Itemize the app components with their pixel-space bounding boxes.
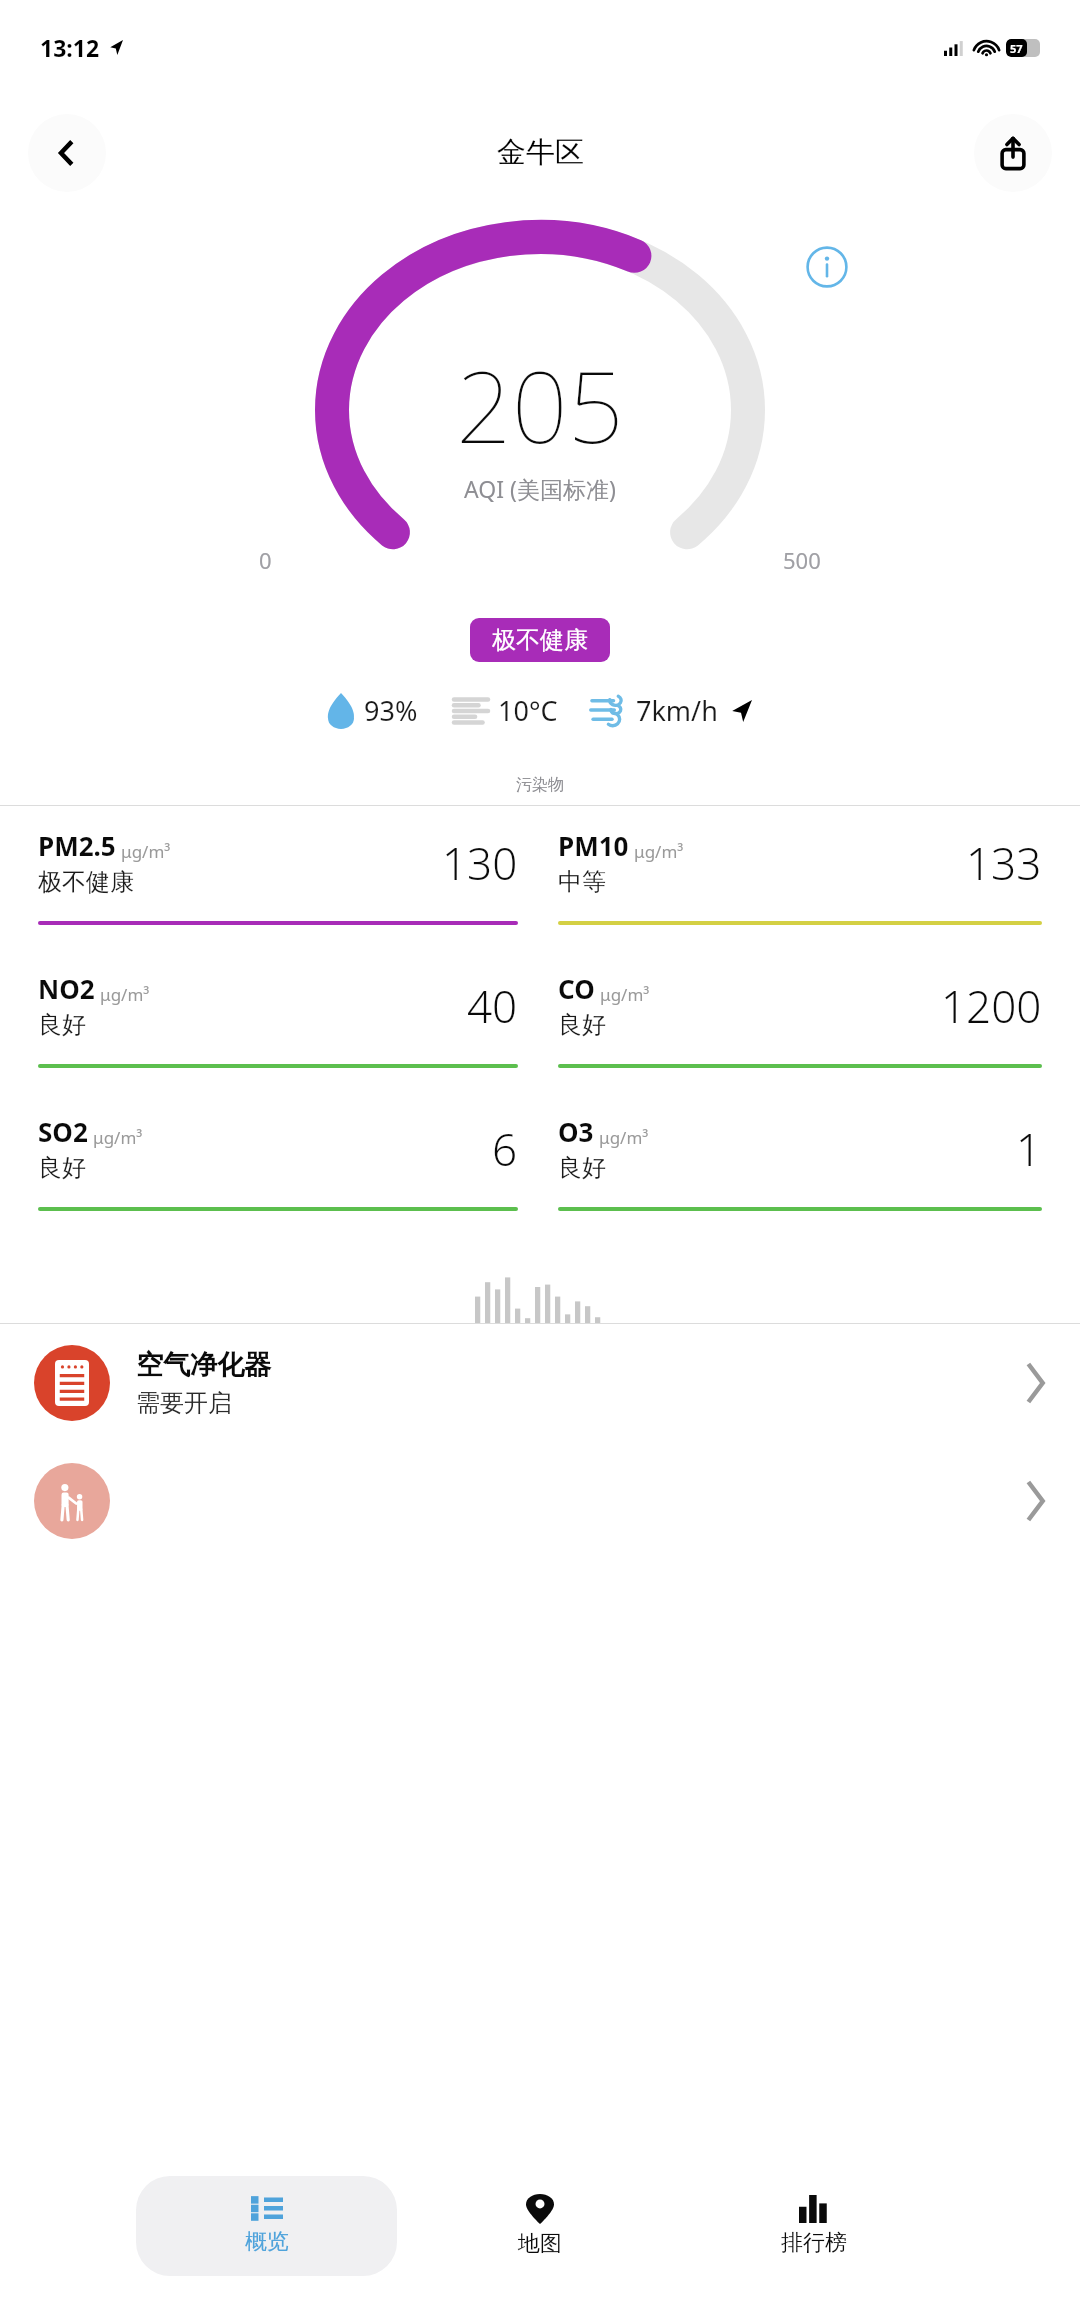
staticText: 1 — [1016, 1119, 1042, 1179]
staticText: O3 — [558, 1114, 594, 1149]
staticText: 130 — [442, 833, 518, 893]
button[interactable]: Back — [28, 114, 106, 192]
button[interactable]: Share — [974, 114, 1052, 192]
staticText: 1200 — [941, 976, 1042, 1036]
button[interactable]: 极不健康 — [470, 618, 610, 662]
button[interactable]: Info — [806, 246, 848, 288]
button[interactable]: 地图 — [403, 2170, 677, 2282]
button[interactable]: 空气净化器 — [0, 1324, 1080, 1442]
staticText: 10°C — [498, 692, 558, 729]
staticText: μg/m³ — [599, 1126, 649, 1149]
staticText: 57 — [1010, 41, 1023, 56]
staticText: NO2 — [38, 971, 95, 1006]
staticText: 7km/h — [636, 692, 718, 729]
staticText: 良好 — [38, 1010, 86, 1040]
staticText: 500 — [783, 545, 821, 575]
staticText: 良好 — [558, 1010, 606, 1040]
staticText: 6 — [492, 1119, 518, 1179]
staticText: AQI (美国标准) — [464, 473, 616, 504]
staticText: 93% — [364, 692, 418, 729]
staticText: μg/m³ — [100, 983, 150, 1006]
staticText: 中等 — [558, 867, 606, 897]
staticText: 金牛区 — [497, 134, 584, 171]
staticText: 污染物 — [0, 775, 1080, 795]
staticText: μg/m³ — [121, 840, 171, 863]
staticText: 133 — [966, 833, 1042, 893]
staticText: 良好 — [558, 1153, 606, 1183]
button[interactable]: 概览 — [136, 2176, 397, 2276]
staticText: 极不健康 — [38, 867, 134, 897]
staticText: 极不健康 — [492, 625, 588, 655]
staticText: 良好 — [38, 1153, 86, 1183]
staticText: 概览 — [245, 2228, 289, 2256]
button[interactable]: NO2 — [38, 949, 518, 1092]
button[interactable]: O3 — [558, 1092, 1042, 1235]
button[interactable]: PM10 — [558, 806, 1042, 949]
button[interactable]: PM2.5 — [38, 806, 518, 949]
staticText: PM2.5 — [38, 828, 116, 863]
staticText: 13:12 — [40, 32, 100, 63]
staticText: PM10 — [558, 828, 629, 863]
staticText: 地图 — [518, 2230, 562, 2258]
staticText: 0 — [259, 545, 272, 575]
button[interactable]: SO2 — [38, 1092, 518, 1235]
staticText: 排行榜 — [781, 2229, 847, 2257]
staticText: μg/m³ — [634, 840, 684, 863]
staticText: μg/m³ — [600, 983, 650, 1006]
staticText: 40 — [467, 976, 518, 1036]
staticText: CO — [558, 971, 595, 1006]
staticText: SO2 — [38, 1114, 88, 1149]
staticText: 205 — [456, 338, 624, 471]
staticText: 需要开启 — [136, 1388, 232, 1418]
button[interactable]: CO — [558, 949, 1042, 1092]
button[interactable]: 排行榜 — [677, 2170, 951, 2282]
staticText: μg/m³ — [93, 1126, 143, 1149]
button[interactable] — [0, 1442, 1080, 1560]
staticText: 空气净化器 — [136, 1348, 271, 1382]
